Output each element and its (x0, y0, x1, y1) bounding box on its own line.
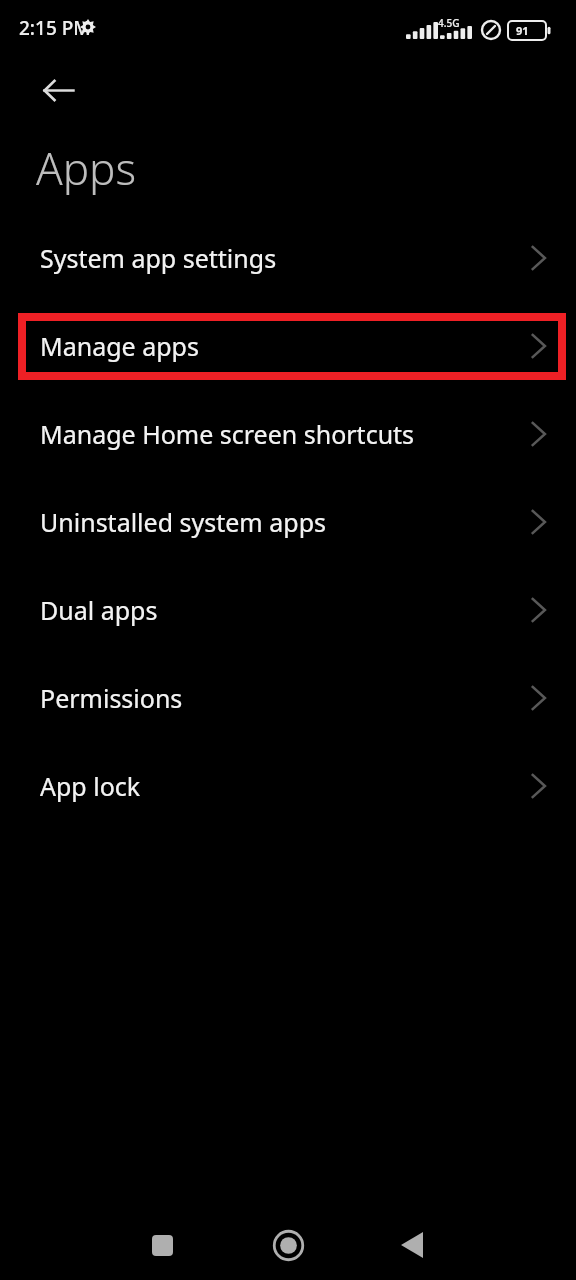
button[interactable]: Permissions (0, 654, 576, 742)
button[interactable]: Dual apps (0, 566, 576, 654)
staticText: Uninstalled system apps (40, 505, 326, 539)
button[interactable]: Manage apps (0, 302, 576, 390)
button[interactable]: Manage Home screen shortcuts (0, 390, 576, 478)
button[interactable]: Back (380, 1213, 444, 1277)
staticText: 2:15 PM (19, 15, 91, 41)
staticText: Manage Home screen shortcuts (40, 417, 415, 451)
staticText: Apps (36, 138, 137, 198)
button[interactable]: App lock (0, 742, 576, 830)
button[interactable]: Back (30, 62, 86, 118)
staticText: App lock (40, 769, 141, 803)
staticText: 4.5G (438, 16, 460, 30)
button[interactable]: Recent apps (130, 1213, 194, 1277)
staticText: System app settings (40, 241, 277, 275)
staticText: Dual apps (40, 593, 158, 627)
button[interactable]: System app settings (0, 214, 576, 302)
button[interactable]: Uninstalled system apps (0, 478, 576, 566)
staticText: Permissions (40, 681, 183, 715)
staticText: Manage apps (40, 329, 199, 363)
button[interactable]: Home (256, 1213, 320, 1277)
staticText: 91 (516, 23, 529, 38)
